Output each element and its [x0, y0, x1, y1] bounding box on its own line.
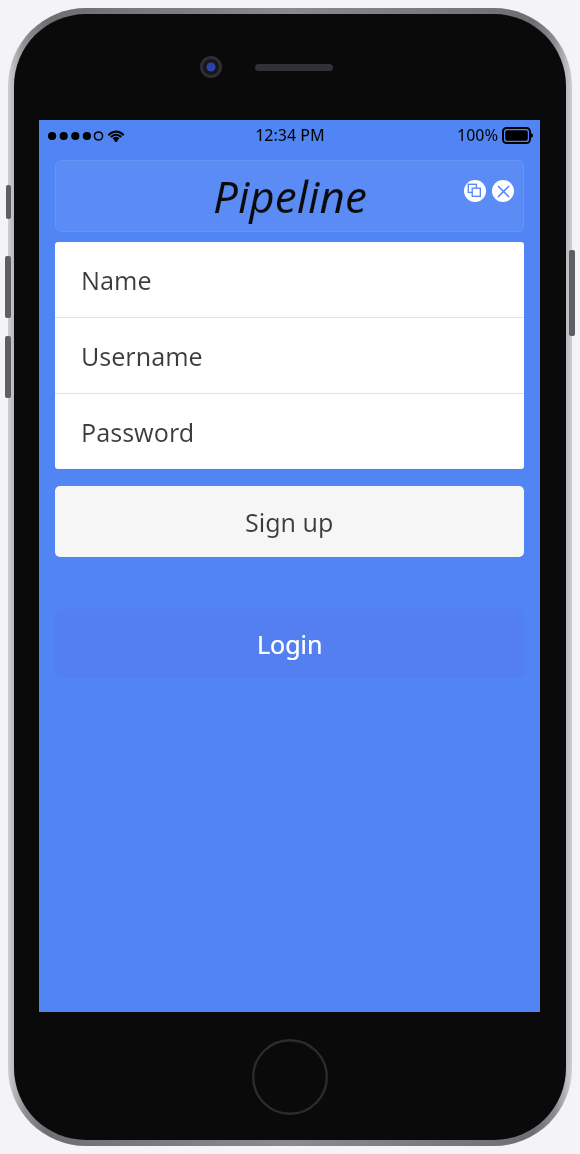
staticText: 100%	[457, 124, 499, 146]
staticText: Sign up	[245, 505, 334, 539]
staticText: 12:34 PM	[255, 124, 325, 146]
button[interactable]: Sign up	[55, 486, 524, 557]
button[interactable]: Name	[55, 242, 524, 317]
button[interactable]: Login	[55, 609, 524, 678]
button[interactable]: Username	[55, 318, 524, 393]
staticText: Username	[81, 339, 203, 373]
staticText: Password	[81, 415, 195, 449]
staticText: Pipeline	[213, 166, 367, 226]
button[interactable]: Close	[492, 180, 514, 202]
staticText: Name	[81, 263, 152, 297]
button[interactable]: Tabs	[464, 180, 486, 202]
button[interactable]: Password	[55, 394, 524, 469]
staticText: Login	[257, 627, 323, 661]
